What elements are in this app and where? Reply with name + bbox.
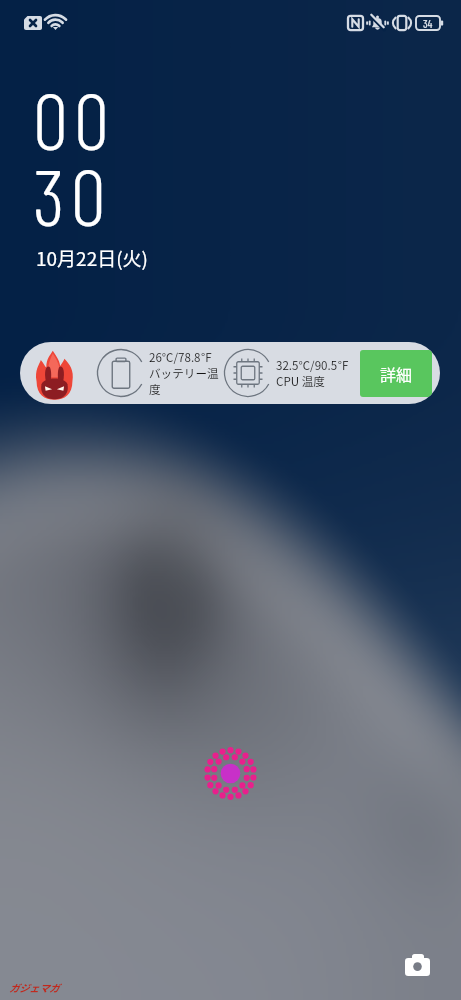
staticText: 00 — [33, 71, 115, 166]
button[interactable]: 詳細 — [360, 350, 432, 397]
staticText: 26℃/78.8℉ バッテリー温度 — [149, 349, 226, 398]
button[interactable]: 26℃/78.8℉ バッテリー温度 — [20, 342, 440, 404]
staticText: 10月22日(火) — [36, 244, 149, 272]
staticText: 32.5℃/90.5℉ CPU 温度 — [276, 357, 360, 390]
button[interactable]: Camera — [395, 944, 440, 989]
staticText: 詳細 — [380, 362, 413, 385]
staticText: ガジェマガ — [9, 980, 59, 994]
staticText: 30 — [33, 147, 112, 242]
staticText: 34 — [423, 17, 433, 30]
button[interactable]: Fingerprint unlock — [197, 740, 264, 807]
